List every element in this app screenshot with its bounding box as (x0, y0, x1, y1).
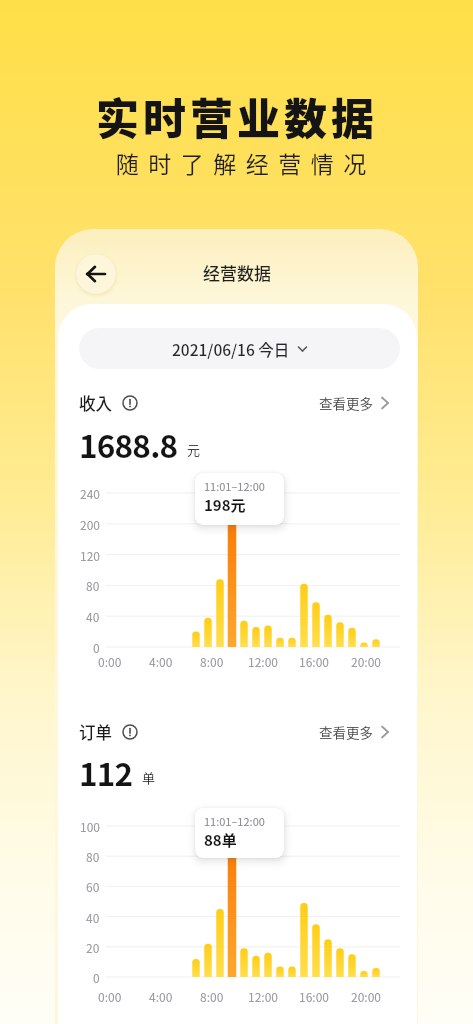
staticText: 198元 (204, 494, 246, 516)
staticText: 12:00 (248, 653, 278, 670)
staticText: 订单 (79, 720, 112, 744)
staticText: 0:00 (98, 988, 122, 1005)
staticText: 0 (93, 969, 100, 986)
staticText: 11:01–12:00 (204, 813, 265, 829)
staticText: 0 (93, 639, 100, 656)
staticText: 100 (80, 818, 100, 835)
staticText: 88单 (204, 829, 237, 851)
staticText: 8:00 (200, 653, 224, 670)
staticText: 40 (86, 608, 100, 625)
staticText: 16:00 (299, 988, 329, 1005)
staticText: 8:00 (200, 988, 224, 1005)
staticText: 经营数据 (203, 260, 271, 285)
staticText: 查看更多 (319, 393, 373, 413)
staticText: 20:00 (351, 988, 381, 1005)
staticText: 实时营业数据 (96, 85, 378, 147)
staticText: 20 (86, 939, 100, 956)
staticText: 20:00 (351, 653, 381, 670)
staticText: 元 (187, 440, 201, 459)
staticText: 80 (86, 848, 100, 865)
staticText: 11:01–12:00 (204, 478, 265, 494)
staticText: 单 (142, 768, 156, 787)
staticText: 2021/06/16 今日 (172, 338, 290, 360)
staticText: 收入 (79, 391, 112, 415)
button[interactable]: 2021/06/16 今日 (79, 328, 400, 369)
staticText: 112 (79, 749, 133, 795)
button[interactable]: 查看更多 (278, 716, 390, 748)
staticText: 60 (86, 878, 100, 895)
staticText: 16:00 (299, 653, 329, 670)
staticText: 200 (80, 516, 100, 533)
button[interactable]: 查看更多 (278, 387, 390, 419)
staticText: 12:00 (248, 988, 278, 1005)
staticText: 80 (86, 577, 100, 594)
staticText: 查看更多 (319, 722, 373, 742)
staticText: 40 (86, 909, 100, 926)
button[interactable] (76, 254, 116, 294)
staticText: 0:00 (98, 653, 122, 670)
staticText: 1688.8 (79, 421, 178, 467)
staticText: 4:00 (149, 653, 173, 670)
staticText: 120 (80, 547, 100, 564)
staticText: 4:00 (149, 988, 173, 1005)
staticText: 随时了解经营情况 (111, 146, 371, 179)
staticText: 240 (80, 485, 100, 502)
